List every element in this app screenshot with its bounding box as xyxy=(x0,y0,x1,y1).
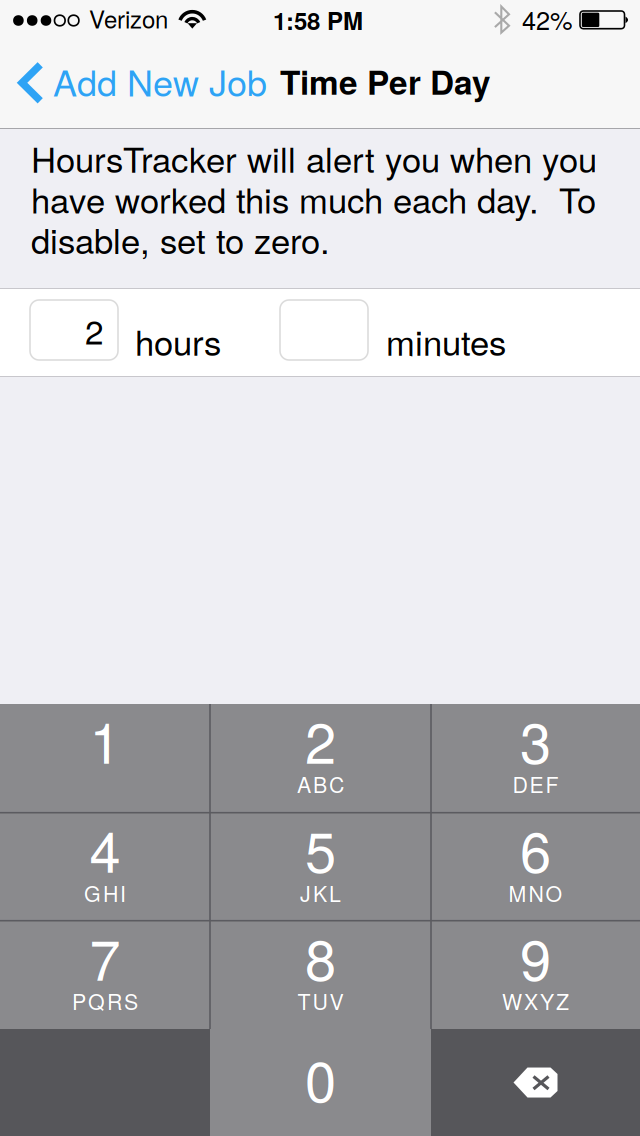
staticText: 7 xyxy=(89,916,120,997)
staticText: TUV xyxy=(297,985,343,1016)
staticText: 1 xyxy=(89,699,120,780)
staticText: ABC xyxy=(297,768,344,799)
staticText: PQRS xyxy=(72,985,138,1016)
staticText: Add New Job xyxy=(53,55,267,107)
staticText: minutes xyxy=(386,316,506,366)
staticText: 42% xyxy=(522,1,573,37)
button[interactable]: 8 xyxy=(210,921,431,1029)
staticText: 3 xyxy=(520,699,551,780)
staticText: MNO xyxy=(508,877,562,908)
staticText: 2 xyxy=(85,306,104,354)
staticText: 0 xyxy=(305,1038,336,1118)
staticText: JKL xyxy=(300,877,341,908)
staticText: 5 xyxy=(305,808,336,889)
staticText: WXYZ xyxy=(502,985,569,1016)
staticText: 6 xyxy=(520,808,551,889)
staticText: DEF xyxy=(512,768,558,799)
button[interactable]: Delete xyxy=(431,1029,640,1136)
button[interactable]: 2 xyxy=(30,300,118,360)
staticText: 2 xyxy=(305,699,336,780)
staticText: 1:58 PM xyxy=(273,3,363,37)
button[interactable]: 2 xyxy=(210,704,431,813)
staticText: 8 xyxy=(305,916,336,997)
button[interactable]: 4 xyxy=(0,813,210,921)
button[interactable]: 9 xyxy=(431,921,640,1029)
staticText: 9 xyxy=(520,916,551,997)
staticText: hours xyxy=(135,316,221,366)
staticText: HoursTracker will alert you when you hav… xyxy=(31,133,597,264)
button[interactable]: 7 xyxy=(0,921,210,1029)
button[interactable]: 5 xyxy=(210,813,431,921)
staticText: Verizon xyxy=(89,1,168,35)
button[interactable] xyxy=(280,300,368,360)
button[interactable]: 3 xyxy=(431,704,640,813)
button[interactable]: 1 xyxy=(0,704,210,813)
staticText: 4 xyxy=(89,808,120,889)
staticText: Time Per Day xyxy=(280,57,491,105)
button[interactable]: 0 xyxy=(210,1029,431,1136)
staticText: GHI xyxy=(84,877,126,908)
button[interactable]: 6 xyxy=(431,813,640,921)
button[interactable]: Add New Job xyxy=(0,42,283,120)
